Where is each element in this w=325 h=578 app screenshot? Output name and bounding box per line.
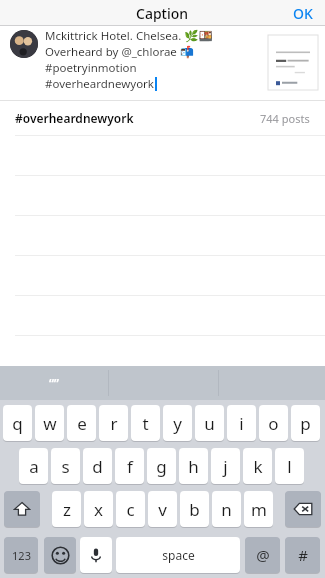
staticText: 123	[12, 548, 31, 563]
button[interactable]: #	[285, 537, 320, 573]
button[interactable]: g	[147, 448, 176, 484]
staticText: o	[268, 412, 279, 435]
button[interactable]: Shift	[4, 491, 40, 527]
staticText: u	[204, 412, 215, 435]
staticText: h	[188, 455, 199, 478]
button[interactable]: OK	[293, 0, 313, 26]
staticText: b	[189, 498, 200, 521]
button[interactable]: 123	[4, 537, 38, 573]
button[interactable]: k	[243, 448, 272, 484]
staticText: “”	[49, 375, 59, 391]
button[interactable]: y	[163, 405, 192, 441]
staticText: Mckittrick Hotel. Chelsea. 🌿🍱	[45, 28, 213, 44]
staticText: @	[256, 545, 270, 565]
staticText: p	[300, 412, 311, 435]
staticText: 744 posts	[260, 111, 310, 126]
staticText: c	[126, 498, 135, 521]
button[interactable]: Emoji	[44, 537, 76, 573]
button[interactable]: e	[67, 405, 96, 441]
button[interactable]: x	[84, 491, 113, 527]
button[interactable]: Dictate	[80, 537, 112, 573]
button[interactable]: w	[35, 405, 64, 441]
button[interactable]: t	[131, 405, 160, 441]
button[interactable]: r	[99, 405, 128, 441]
button[interactable]: @	[245, 537, 280, 573]
staticText: q	[12, 412, 23, 435]
button[interactable]: j	[211, 448, 240, 484]
staticText: t	[142, 412, 149, 435]
staticText: #overheardnewyork	[45, 76, 154, 92]
staticText: x	[94, 498, 103, 521]
staticText: Overheard by @_chlorae 📬	[45, 44, 195, 60]
button[interactable]	[268, 35, 318, 90]
staticText: n	[221, 498, 232, 521]
staticText: #	[298, 545, 308, 565]
staticText: e	[77, 412, 87, 435]
button[interactable]: “”	[0, 366, 108, 400]
staticText: f	[127, 455, 133, 478]
button[interactable]: o	[259, 405, 288, 441]
staticText: OK	[293, 4, 313, 23]
button[interactable]: f	[115, 448, 144, 484]
button[interactable]: z	[52, 491, 81, 527]
button[interactable]: q	[3, 405, 32, 441]
staticText: r	[110, 412, 118, 435]
staticText: w	[43, 412, 57, 435]
staticText: v	[158, 498, 167, 521]
staticText: a	[29, 455, 39, 478]
staticText: space	[162, 547, 195, 563]
button[interactable]: h	[179, 448, 208, 484]
button[interactable]: m	[244, 491, 273, 527]
button[interactable]: b	[180, 491, 209, 527]
button[interactable]: s	[51, 448, 80, 484]
button[interactable]: a	[19, 448, 48, 484]
button[interactable]: i	[227, 405, 256, 441]
button[interactable]: p	[291, 405, 320, 441]
button[interactable]	[10, 30, 38, 58]
button[interactable]: v	[148, 491, 177, 527]
staticText: #poetryinmotion	[45, 60, 137, 76]
staticText: j	[223, 455, 228, 478]
button[interactable]: l	[275, 448, 304, 484]
staticText: m	[251, 498, 267, 521]
staticText: g	[156, 455, 167, 478]
staticText: d	[92, 455, 103, 478]
staticText: s	[61, 455, 70, 478]
staticText: i	[239, 412, 244, 435]
staticText: k	[253, 455, 263, 478]
staticText: #overheardnewyork	[15, 110, 134, 126]
staticText: z	[63, 498, 71, 521]
staticText: y	[173, 412, 182, 435]
button[interactable]: Backspace	[285, 491, 321, 527]
button[interactable]: c	[116, 491, 145, 527]
staticText: Caption	[136, 4, 189, 23]
button[interactable]: n	[212, 491, 241, 527]
button[interactable]: d	[83, 448, 112, 484]
staticText: l	[287, 455, 292, 478]
button[interactable]: #overheardnewyork	[0, 101, 325, 135]
button[interactable]: u	[195, 405, 224, 441]
button[interactable]: space	[116, 537, 240, 573]
